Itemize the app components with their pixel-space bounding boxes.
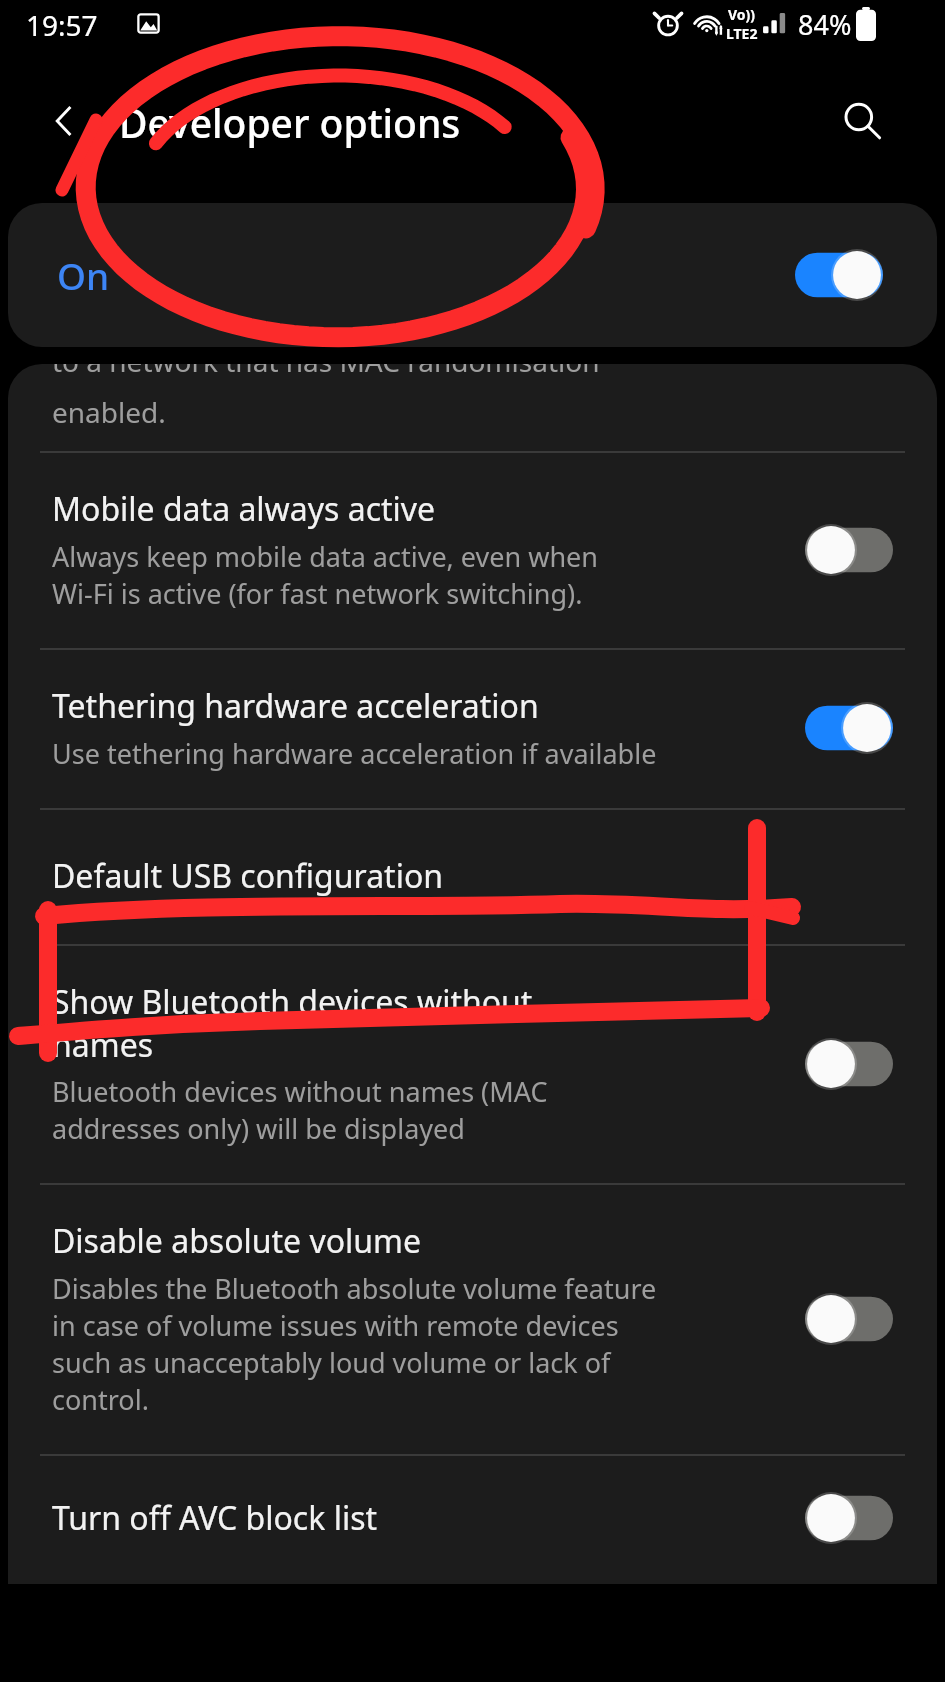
button[interactable]: Turn off AVC block list bbox=[8, 1456, 937, 1584]
button[interactable]: Search bbox=[829, 88, 895, 154]
staticText: 19:57 bbox=[26, 6, 98, 44]
button[interactable]: Disable absolute volume bbox=[8, 1185, 937, 1454]
staticText: On bbox=[57, 250, 110, 300]
button[interactable]: Toggle off bbox=[805, 1293, 893, 1345]
staticText: LTE2 bbox=[726, 24, 758, 43]
button[interactable]: Toggle off bbox=[805, 1492, 893, 1544]
button[interactable]: Toggle on bbox=[805, 702, 893, 754]
button[interactable]: On bbox=[8, 203, 937, 347]
button[interactable]: Toggle off bbox=[805, 524, 893, 576]
staticText: Disable absolute volume bbox=[52, 1219, 422, 1263]
staticText: 84% bbox=[798, 6, 852, 43]
staticText: Turn off AVC block list bbox=[52, 1496, 378, 1540]
staticText: Use tethering hardware acceleration if a… bbox=[52, 735, 657, 772]
button[interactable]: Tethering hardware acceleration bbox=[8, 650, 937, 808]
button[interactable]: Mobile data always active bbox=[8, 453, 937, 648]
staticText: enabled. bbox=[52, 393, 166, 431]
button[interactable]: to a network that has MAC randomisation bbox=[8, 364, 937, 451]
button[interactable]: Back bbox=[36, 93, 92, 149]
staticText: Tethering hardware acceleration bbox=[52, 684, 539, 728]
staticText: Vo)) bbox=[728, 5, 756, 24]
staticText: Disables the Bluetooth absolute volume f… bbox=[52, 1270, 657, 1418]
button[interactable]: Toggle off bbox=[805, 1038, 893, 1090]
button[interactable]: Toggle on bbox=[795, 249, 883, 301]
staticText: Show Bluetooth devices without names bbox=[52, 980, 533, 1066]
button[interactable]: Show Bluetooth devices without names bbox=[8, 946, 937, 1183]
button[interactable]: Default USB configuration bbox=[8, 810, 937, 944]
staticText: Mobile data always active bbox=[52, 487, 436, 531]
staticText: Developer options bbox=[119, 96, 461, 149]
staticText: to a network that has MAC randomisation bbox=[52, 364, 600, 380]
staticText: Default USB configuration bbox=[52, 854, 444, 898]
staticText: Bluetooth devices without names (MAC add… bbox=[52, 1073, 548, 1147]
staticText: Always keep mobile data active, even whe… bbox=[52, 538, 599, 612]
